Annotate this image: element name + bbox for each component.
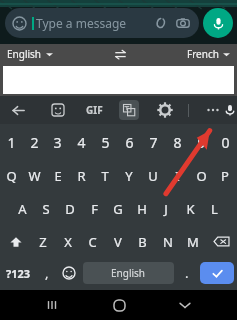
button[interactable]: B [130, 225, 155, 258]
staticText: 2 [30, 133, 39, 152]
button[interactable]: O [189, 159, 213, 192]
button[interactable]: W [23, 159, 46, 192]
button[interactable]: Type a message [5, 8, 199, 38]
staticText: 8 [173, 133, 182, 152]
button[interactable]: 3 [46, 126, 69, 159]
staticText: G [113, 200, 123, 218]
staticText: X [64, 233, 72, 251]
staticText: 4 [77, 133, 86, 152]
button[interactable]: H [130, 192, 154, 225]
button[interactable]: R [69, 159, 93, 192]
button[interactable]: 1 [0, 126, 23, 159]
staticText: E [54, 167, 62, 185]
button[interactable]: J [154, 192, 178, 225]
button[interactable]: N [155, 225, 180, 258]
button[interactable]: G [106, 192, 130, 225]
staticText: V [114, 233, 122, 251]
staticText: P [221, 167, 229, 185]
staticText: K [186, 200, 195, 218]
button[interactable]: French [187, 47, 230, 61]
staticText: French [187, 47, 219, 61]
button[interactable]: S [34, 192, 58, 225]
button[interactable]: Q [0, 159, 23, 192]
button[interactable]: 8 [165, 126, 189, 159]
button[interactable]: P [213, 159, 237, 192]
staticText: F [91, 200, 98, 218]
button[interactable]: Back [8, 100, 28, 120]
button[interactable]: Shift [0, 225, 31, 258]
button[interactable]: C [80, 225, 105, 258]
staticText: R [77, 167, 86, 185]
staticText: 7 [149, 133, 158, 152]
button[interactable]: 6 [117, 126, 141, 159]
button[interactable]: Voice input [223, 100, 237, 120]
staticText: I [175, 167, 180, 185]
button[interactable]: Z [31, 225, 55, 258]
button[interactable]: Backspace [205, 225, 237, 258]
button[interactable]: V [105, 225, 130, 258]
staticText: 0 [221, 133, 230, 152]
button[interactable]: Translate [119, 100, 139, 120]
staticText: Type a message [36, 15, 127, 31]
staticText: Y [125, 167, 133, 185]
button[interactable]: 4 [69, 126, 93, 159]
button[interactable]: K [178, 192, 202, 225]
staticText: English [111, 266, 146, 280]
button[interactable]: A [11, 192, 34, 225]
button[interactable]: Recents [37, 290, 67, 320]
button[interactable]: 0 [213, 126, 237, 159]
staticText: M [187, 233, 199, 251]
button[interactable]: Back [170, 290, 200, 320]
staticText: English [7, 47, 42, 61]
staticText: U [148, 167, 158, 185]
button[interactable]: T [93, 159, 117, 192]
staticText: . [185, 264, 189, 282]
button[interactable]: More options [203, 100, 223, 120]
staticText: 3 [53, 133, 62, 152]
button[interactable]: Home [104, 290, 134, 320]
button[interactable]: E [46, 159, 69, 192]
staticText: C [88, 233, 97, 251]
staticText: ?123 [6, 266, 31, 281]
staticText: S [42, 200, 50, 218]
staticText: N [163, 233, 173, 251]
button[interactable]: Voice message [203, 8, 233, 38]
staticText: L [211, 200, 218, 218]
staticText: GIF [86, 103, 103, 117]
button[interactable]: Enter [200, 262, 234, 284]
button[interactable]: D [58, 192, 82, 225]
staticText: , [45, 264, 49, 282]
staticText: A [18, 200, 27, 218]
button[interactable]: U [141, 159, 165, 192]
button[interactable]: F [82, 192, 106, 225]
button[interactable]: Stickers [48, 100, 68, 120]
button[interactable]: Swap languages [112, 46, 128, 62]
button[interactable]: GIF [86, 103, 103, 117]
staticText: Z [39, 233, 47, 251]
button[interactable]: I [165, 159, 189, 192]
staticText: O [196, 167, 207, 185]
button[interactable]: . [176, 258, 197, 288]
button[interactable]: 2 [23, 126, 46, 159]
button[interactable]: , [36, 258, 57, 288]
staticText: 9 [197, 133, 206, 152]
button[interactable]: Y [117, 159, 141, 192]
button[interactable]: Emoji [57, 258, 81, 288]
button[interactable]: English [7, 47, 53, 61]
staticText: H [137, 200, 147, 218]
button[interactable]: 9 [189, 126, 213, 159]
button[interactable]: L [202, 192, 226, 225]
button[interactable]: 5 [93, 126, 117, 159]
staticText: 5 [101, 133, 110, 152]
button[interactable]: 7 [141, 126, 165, 159]
button[interactable]: Settings [155, 100, 175, 120]
button[interactable]: X [55, 225, 80, 258]
staticText: 6 [125, 133, 134, 152]
staticText: W [28, 167, 41, 185]
staticText: T [101, 167, 109, 185]
button[interactable]: English [83, 262, 174, 284]
button[interactable]: M [180, 225, 205, 258]
staticText: 1 [7, 133, 16, 152]
button[interactable]: ?123 [0, 258, 36, 288]
